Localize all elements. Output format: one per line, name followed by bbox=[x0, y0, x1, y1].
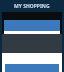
staticText: MY SHOPPING bbox=[14, 3, 50, 10]
